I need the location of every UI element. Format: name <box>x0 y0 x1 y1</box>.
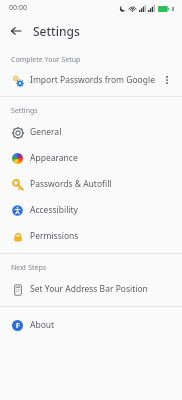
staticText: Set Your Address Bar Position <box>30 283 148 295</box>
button[interactable]: More options <box>158 71 176 89</box>
staticText: Settings <box>33 23 80 39</box>
staticText: Permissions <box>30 230 79 242</box>
staticText: Import Passwords from Google <box>30 74 158 86</box>
staticText: Complete Your Setup <box>11 55 81 65</box>
staticText: Accessibility <box>30 204 78 216</box>
staticText: Passwords & Autofill <box>30 178 112 190</box>
staticText: About <box>30 319 55 331</box>
button[interactable]: Import Passwords from Google <box>0 68 182 92</box>
staticText: General <box>30 126 62 138</box>
staticText: Appearance <box>30 152 78 164</box>
button[interactable]: Back <box>7 22 25 40</box>
staticText: Next Steps <box>11 263 47 273</box>
button[interactable]: Accessibility <box>0 197 182 223</box>
button[interactable]: Appearance <box>0 145 182 171</box>
staticText: F <box>16 321 20 331</box>
button[interactable]: F <box>0 312 182 338</box>
button[interactable]: Passwords & Autofill <box>0 171 182 197</box>
button[interactable]: Set Your Address Bar Position <box>0 276 182 302</box>
button[interactable]: Permissions <box>0 223 182 249</box>
button[interactable]: General <box>0 119 182 145</box>
staticText: Settings <box>11 106 38 116</box>
staticText: 00:00 <box>9 3 27 13</box>
